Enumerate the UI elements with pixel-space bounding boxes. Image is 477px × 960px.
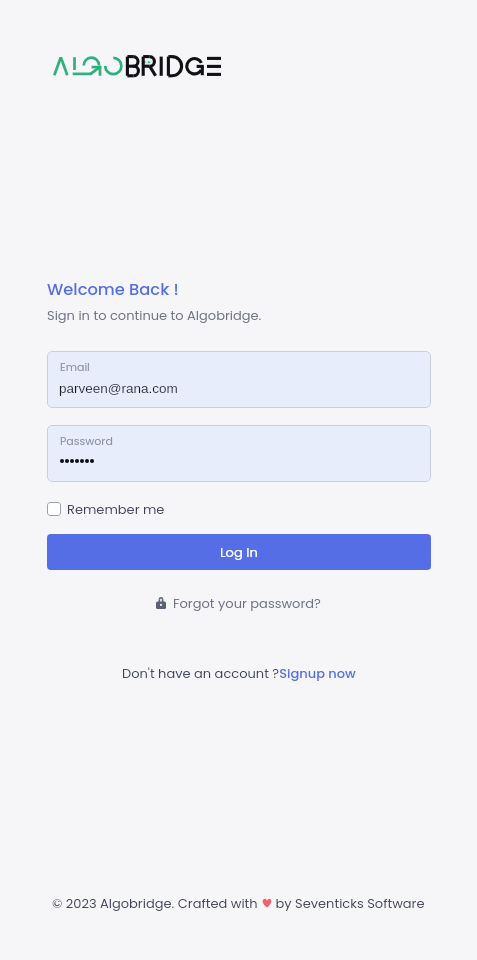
button[interactable]: Lock <box>156 594 321 612</box>
button[interactable]: Log In <box>47 534 431 570</box>
staticText: Forgot your password? <box>173 594 321 612</box>
staticText: Email <box>60 359 90 374</box>
staticText: parveen@rana.com <box>59 381 178 396</box>
staticText: Log In <box>220 543 258 561</box>
staticText: Sign in to continue to Algobridge. <box>47 306 262 324</box>
staticText: Password <box>60 433 113 448</box>
button[interactable]: Don't have an account ?Signup now <box>122 664 356 682</box>
button[interactable]: Email <box>47 351 431 408</box>
button[interactable]: Remember me <box>47 500 165 518</box>
staticText: Remember me <box>67 500 165 518</box>
staticText: Welcome Back ! <box>47 278 179 301</box>
button[interactable]: Password <box>47 425 431 482</box>
staticText: © 2023 Algobridge. Crafted with <box>52 894 262 912</box>
staticText: by Seventicks Software <box>272 894 425 912</box>
other: Lock <box>156 597 166 609</box>
